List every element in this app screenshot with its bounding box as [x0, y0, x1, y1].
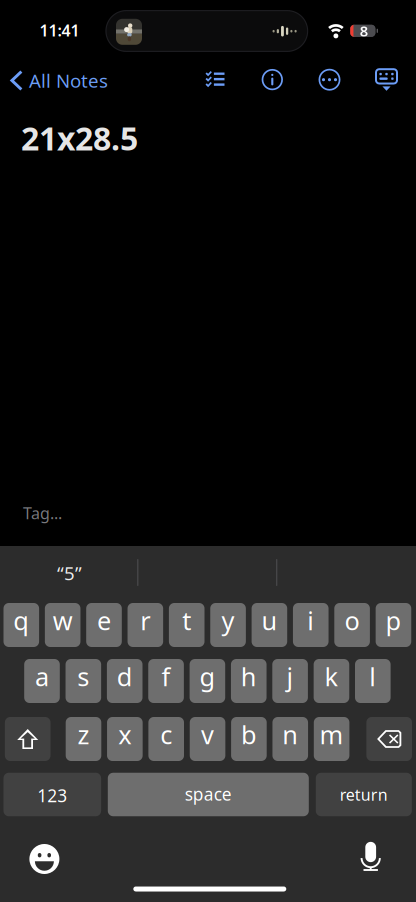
- button[interactable]: b: [231, 717, 267, 761]
- button[interactable]: x: [107, 717, 143, 761]
- staticText: b: [241, 718, 257, 751]
- button[interactable]: o: [334, 603, 370, 647]
- button[interactable]: Info: [250, 58, 294, 102]
- button[interactable]: l: [355, 659, 391, 703]
- staticText: Tag...: [23, 502, 62, 524]
- button[interactable]: f: [148, 659, 184, 703]
- button[interactable]: y: [210, 603, 246, 647]
- button[interactable]: m: [314, 717, 349, 761]
- button[interactable]: w: [45, 603, 80, 647]
- staticText: g: [199, 660, 215, 693]
- staticText: u: [261, 604, 277, 637]
- button[interactable]: j: [272, 659, 308, 703]
- staticText: l: [369, 660, 376, 693]
- staticText: “5”: [57, 561, 82, 585]
- staticText: o: [345, 604, 360, 637]
- staticText: return: [340, 784, 388, 805]
- staticText: c: [160, 718, 172, 751]
- staticText: k: [324, 660, 338, 693]
- staticText: d: [117, 660, 133, 693]
- button[interactable]: z: [66, 717, 101, 761]
- staticText: space: [185, 782, 232, 805]
- button[interactable]: n: [272, 717, 308, 761]
- button[interactable]: r: [128, 603, 163, 647]
- button[interactable]: u: [252, 603, 287, 647]
- staticText: 8: [360, 21, 368, 41]
- staticText: r: [140, 604, 150, 637]
- button[interactable]: q: [3, 603, 39, 647]
- staticText: 21x28.5: [21, 117, 138, 159]
- staticText: s: [77, 660, 89, 693]
- staticText: m: [320, 718, 344, 751]
- staticText: z: [77, 718, 89, 751]
- button[interactable]: v: [190, 717, 225, 761]
- staticText: t: [182, 604, 191, 637]
- button[interactable]: g: [190, 659, 225, 703]
- button[interactable]: d: [107, 659, 142, 703]
- button[interactable]: 123: [3, 773, 101, 816]
- button[interactable]: All Notes: [0, 59, 117, 102]
- button[interactable]: p: [376, 603, 411, 647]
- button[interactable]: Dictation: [348, 837, 394, 879]
- button[interactable]: a: [24, 659, 60, 703]
- button[interactable]: Checklist: [193, 57, 237, 101]
- staticText: q: [13, 604, 29, 637]
- staticText: 123: [37, 784, 67, 807]
- button[interactable]: t: [169, 603, 204, 647]
- button[interactable]: Delete: [366, 717, 412, 761]
- button[interactable]: More: [307, 58, 351, 102]
- staticText: y: [222, 604, 235, 637]
- staticText: h: [241, 660, 257, 693]
- button[interactable]: return: [316, 773, 412, 816]
- staticText: f: [162, 660, 171, 693]
- staticText: All Notes: [29, 68, 108, 93]
- staticText: x: [118, 718, 131, 751]
- staticText: a: [35, 660, 49, 693]
- staticText: i: [307, 604, 314, 637]
- button[interactable]: c: [148, 717, 184, 761]
- button[interactable]: Hide Keyboard: [364, 57, 408, 101]
- staticText: p: [385, 604, 401, 637]
- staticText: j: [287, 660, 294, 693]
- staticText: 11:41: [40, 20, 80, 41]
- button[interactable]: Shift: [5, 717, 50, 761]
- button[interactable]: i: [293, 603, 328, 647]
- button[interactable]: s: [65, 659, 101, 703]
- staticText: w: [53, 604, 73, 637]
- button[interactable]: space: [108, 773, 309, 816]
- button[interactable]: e: [86, 603, 122, 647]
- button[interactable]: h: [231, 659, 266, 703]
- staticText: n: [282, 718, 298, 751]
- button[interactable]: k: [314, 659, 349, 703]
- button[interactable]: Emoji keyboard: [21, 838, 67, 880]
- staticText: v: [201, 718, 214, 751]
- staticText: e: [97, 604, 111, 637]
